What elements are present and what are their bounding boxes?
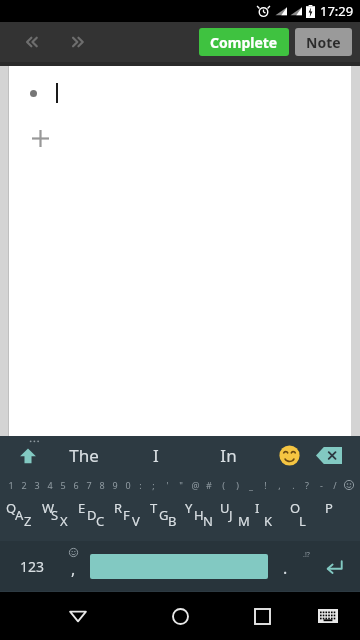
staticText: : — [139, 479, 142, 491]
button[interactable]: Note — [295, 28, 352, 56]
button[interactable]: 5 — [56, 474, 69, 495]
button[interactable]: Comma and emoji — [58, 544, 88, 588]
staticText: / — [333, 479, 337, 491]
button[interactable]: T — [147, 495, 182, 541]
staticText: ) — [236, 479, 239, 491]
staticText: G — [159, 506, 169, 524]
staticText: . — [292, 479, 295, 491]
staticText: W — [42, 499, 55, 517]
staticText: I — [255, 499, 260, 517]
button[interactable]: 9 — [108, 474, 121, 495]
staticText: . — [283, 557, 288, 579]
staticText: , — [71, 558, 76, 580]
staticText: R — [114, 499, 123, 517]
staticText: M — [238, 512, 250, 530]
button[interactable]: " — [174, 474, 188, 495]
button[interactable]: - — [314, 474, 328, 495]
button[interactable]: 7 — [82, 474, 95, 495]
button[interactable]: Outdent — [14, 25, 48, 59]
staticText: @ — [191, 479, 200, 491]
staticText: V — [132, 512, 140, 530]
staticText: ; — [152, 479, 155, 491]
button[interactable]: Add item — [26, 124, 54, 152]
button[interactable]: Q — [3, 495, 39, 541]
staticText: U — [220, 499, 230, 517]
staticText: ( — [222, 479, 225, 491]
button[interactable]: Back — [58, 596, 98, 636]
button[interactable]: I — [252, 495, 287, 541]
button[interactable]: . — [286, 474, 300, 495]
staticText: E — [78, 499, 86, 517]
button[interactable]: _ — [244, 474, 258, 495]
button[interactable]: Indent — [60, 25, 94, 59]
staticText: _ — [249, 479, 253, 491]
staticText: 1 — [8, 479, 14, 491]
button[interactable]: I — [120, 436, 192, 474]
staticText: L — [299, 512, 306, 530]
button[interactable]: Space — [90, 554, 268, 579]
staticText: The — [69, 444, 99, 467]
staticText: D — [87, 506, 97, 524]
staticText: N — [203, 512, 213, 530]
staticText: O — [290, 499, 301, 517]
staticText: 123 — [20, 557, 45, 576]
button[interactable] — [30, 80, 360, 106]
button[interactable]: ' — [160, 474, 174, 495]
staticText: Complete — [210, 33, 278, 52]
button[interactable]: 1 — [4, 474, 17, 495]
staticText: B — [168, 512, 177, 530]
staticText: " — [179, 479, 183, 491]
button[interactable]: 2 — [17, 474, 30, 495]
staticText: 4 — [47, 479, 53, 491]
button[interactable]: # — [202, 474, 216, 495]
button[interactable]: 123 — [6, 544, 58, 588]
button[interactable]: R — [111, 495, 147, 541]
button[interactable]: Hide keyboard — [310, 598, 346, 634]
staticText: K — [264, 512, 273, 530]
button[interactable]: @ — [188, 474, 202, 495]
button[interactable]: Emoji keyboard — [342, 474, 356, 495]
button[interactable]: 3 — [30, 474, 43, 495]
button[interactable]: Home — [160, 596, 200, 636]
staticText: ' — [166, 479, 169, 491]
button[interactable]: 6 — [69, 474, 82, 495]
button[interactable]: Backspace — [310, 436, 348, 474]
button[interactable]: Expand suggestions — [0, 436, 56, 474]
button[interactable]: , — [272, 474, 286, 495]
staticText: 8 — [99, 479, 105, 491]
button[interactable]: : — [134, 474, 147, 495]
button[interactable]: W — [39, 495, 75, 541]
staticText: ! — [264, 479, 267, 491]
button[interactable]: Complete — [199, 28, 289, 56]
button[interactable]: ( — [216, 474, 230, 495]
button[interactable]: ? — [300, 474, 314, 495]
button[interactable]: The — [48, 436, 120, 474]
staticText: ? — [305, 479, 309, 491]
button[interactable]: 4 — [43, 474, 56, 495]
button[interactable]: Y — [182, 495, 217, 541]
staticText: T — [150, 499, 158, 517]
button[interactable]: Enter — [314, 544, 354, 588]
button[interactable]: 0 — [121, 474, 134, 495]
staticText: - — [320, 479, 323, 491]
staticText: F — [123, 506, 130, 524]
button[interactable]: E — [75, 495, 111, 541]
staticText: 0 — [125, 479, 131, 491]
staticText: Note — [306, 33, 341, 52]
button[interactable]: ; — [147, 474, 160, 495]
button[interactable]: Recent apps — [242, 596, 282, 636]
button[interactable]: In — [192, 436, 264, 474]
button[interactable]: ! — [258, 474, 272, 495]
staticText: J — [229, 506, 233, 524]
button[interactable]: Emoji — [272, 438, 306, 472]
button[interactable]: O — [287, 495, 322, 541]
button[interactable]: ) — [230, 474, 244, 495]
button[interactable]: / — [328, 474, 342, 495]
button[interactable]: 8 — [95, 474, 108, 495]
staticText: 3 — [34, 479, 40, 491]
staticText: I — [153, 444, 159, 467]
staticText: H — [194, 506, 204, 524]
button[interactable]: U — [217, 495, 252, 541]
button[interactable]: P — [322, 495, 357, 541]
button[interactable]: Period and symbols — [280, 544, 312, 588]
